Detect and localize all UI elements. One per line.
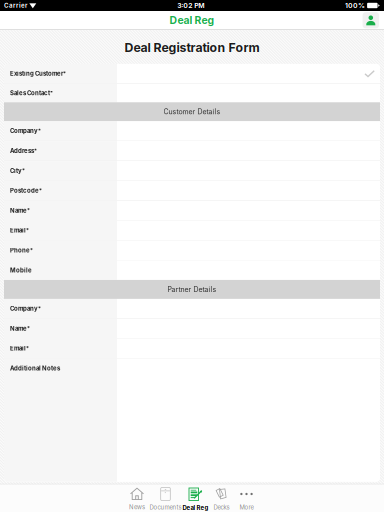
staticText: Mobile: [10, 267, 32, 274]
staticText: Name: [10, 325, 27, 332]
button[interactable]: Mobile: [4, 260, 380, 280]
staticText: City: [10, 167, 22, 174]
button[interactable]: Postcode: [4, 181, 380, 200]
staticText: *: [27, 207, 30, 213]
staticText: *: [26, 345, 29, 351]
button[interactable]: Email: [4, 221, 380, 240]
button[interactable]: Existing Customer: [4, 64, 380, 83]
button[interactable]: Phone: [4, 241, 380, 260]
staticText: *: [38, 127, 41, 134]
staticText: *: [30, 247, 33, 253]
staticText: Additional Notes: [10, 365, 60, 372]
staticText: More: [239, 504, 253, 511]
button[interactable]: Name: [4, 319, 380, 338]
staticText: Company: [10, 127, 38, 135]
button[interactable]: Additional Notes: [4, 359, 380, 482]
button[interactable]: Documents: [149, 484, 182, 512]
staticText: *: [26, 227, 29, 233]
staticText: Deal Reg: [169, 14, 214, 27]
staticText: News: [129, 503, 145, 511]
button[interactable]: City: [4, 161, 380, 180]
staticText: Partner Details: [167, 285, 216, 294]
button[interactable]: Name: [4, 201, 380, 220]
staticText: Email: [10, 227, 26, 234]
button[interactable]: Account: [363, 12, 379, 28]
staticText: Decks: [213, 504, 229, 511]
staticText: Customer Details: [163, 107, 220, 116]
staticText: Deal Reg: [182, 504, 208, 512]
staticText: *: [63, 70, 66, 76]
button[interactable]: Email: [4, 339, 380, 358]
staticText: 100%: [345, 1, 365, 10]
staticText: 3:02 PM: [177, 1, 204, 10]
staticText: Postcode: [10, 187, 39, 194]
staticText: *: [50, 89, 53, 96]
staticText: Company: [10, 305, 38, 312]
staticText: Email: [10, 345, 26, 352]
staticText: Existing Customer: [10, 70, 63, 77]
staticText: *: [27, 325, 30, 331]
button[interactable]: Deal Reg: [182, 484, 209, 512]
staticText: Name: [10, 207, 27, 214]
staticText: Phone: [10, 247, 30, 254]
button[interactable]: Sales Contact: [4, 84, 380, 102]
staticText: Deal Registration Form: [124, 40, 259, 55]
button[interactable]: News: [125, 484, 149, 512]
staticText: *: [38, 305, 41, 311]
button[interactable]: Company: [4, 121, 380, 141]
staticText: Carrier: [4, 2, 27, 9]
button[interactable]: Decks: [209, 484, 234, 512]
staticText: *: [39, 187, 42, 193]
staticText: Documents: [149, 504, 181, 511]
staticText: *: [22, 167, 25, 174]
button[interactable]: Address: [4, 141, 380, 160]
staticText: *: [34, 147, 37, 154]
button[interactable]: Company: [4, 299, 380, 318]
button[interactable]: More: [234, 484, 259, 512]
staticText: Sales Contact: [10, 89, 50, 97]
staticText: Address: [10, 147, 34, 154]
